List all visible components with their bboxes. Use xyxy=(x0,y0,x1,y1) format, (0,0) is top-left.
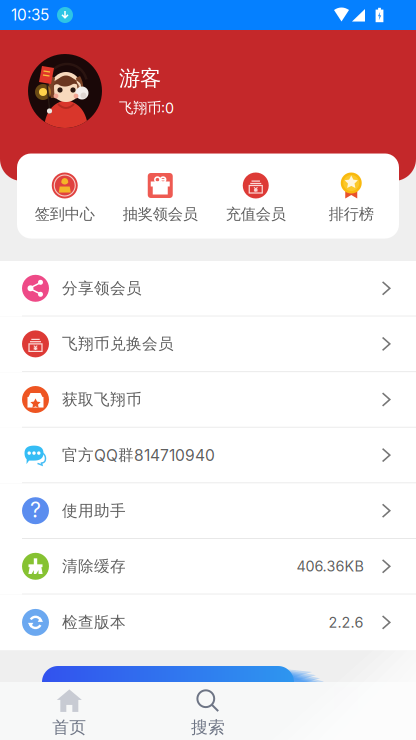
button[interactable]: 签到中心 xyxy=(17,153,112,238)
button[interactable]: 首页 xyxy=(0,689,139,738)
staticText: 飞翔币兑换会员 xyxy=(62,334,174,354)
button[interactable]: 清除缓存 xyxy=(0,539,416,595)
button[interactable]: 抽奖领会员 xyxy=(112,153,208,238)
staticText: 分享领会员 xyxy=(62,278,142,298)
staticText: 2.2.6 xyxy=(328,614,363,631)
button[interactable]: 飞翔币兑换会员 xyxy=(0,317,416,372)
staticText: 充值会员 xyxy=(226,204,286,224)
staticText: 官方QQ群814710940 xyxy=(62,445,215,465)
staticText: 检查版本 xyxy=(62,613,126,632)
button[interactable]: ? xyxy=(0,483,416,539)
staticText: 获取飞翔币 xyxy=(62,390,142,409)
staticText: 406.36KB xyxy=(296,558,363,575)
button[interactable]: 获取飞翔币 xyxy=(0,372,416,428)
staticText: 游客 xyxy=(119,65,161,92)
button[interactable]: 充值会员 xyxy=(208,153,303,238)
staticText: 首页 xyxy=(52,717,86,738)
staticText: 飞翔币:0 xyxy=(119,99,174,117)
staticText: 10:35 xyxy=(11,6,49,24)
staticText: 清除缓存 xyxy=(62,556,126,576)
button[interactable]: 搜索 xyxy=(139,689,277,738)
button[interactable]: 检查版本 xyxy=(0,595,416,650)
staticText: 排行榜 xyxy=(329,204,374,224)
staticText: 搜索 xyxy=(191,717,225,738)
staticText: 抽奖领会员 xyxy=(123,204,198,224)
button[interactable]: 官方QQ群814710940 xyxy=(0,428,416,483)
button[interactable]: 排行榜 xyxy=(303,153,399,238)
staticText: 使用助手 xyxy=(62,501,126,521)
button[interactable]: 分享领会员 xyxy=(0,261,416,317)
staticText: ? xyxy=(30,497,41,523)
staticText: 签到中心 xyxy=(35,204,95,224)
